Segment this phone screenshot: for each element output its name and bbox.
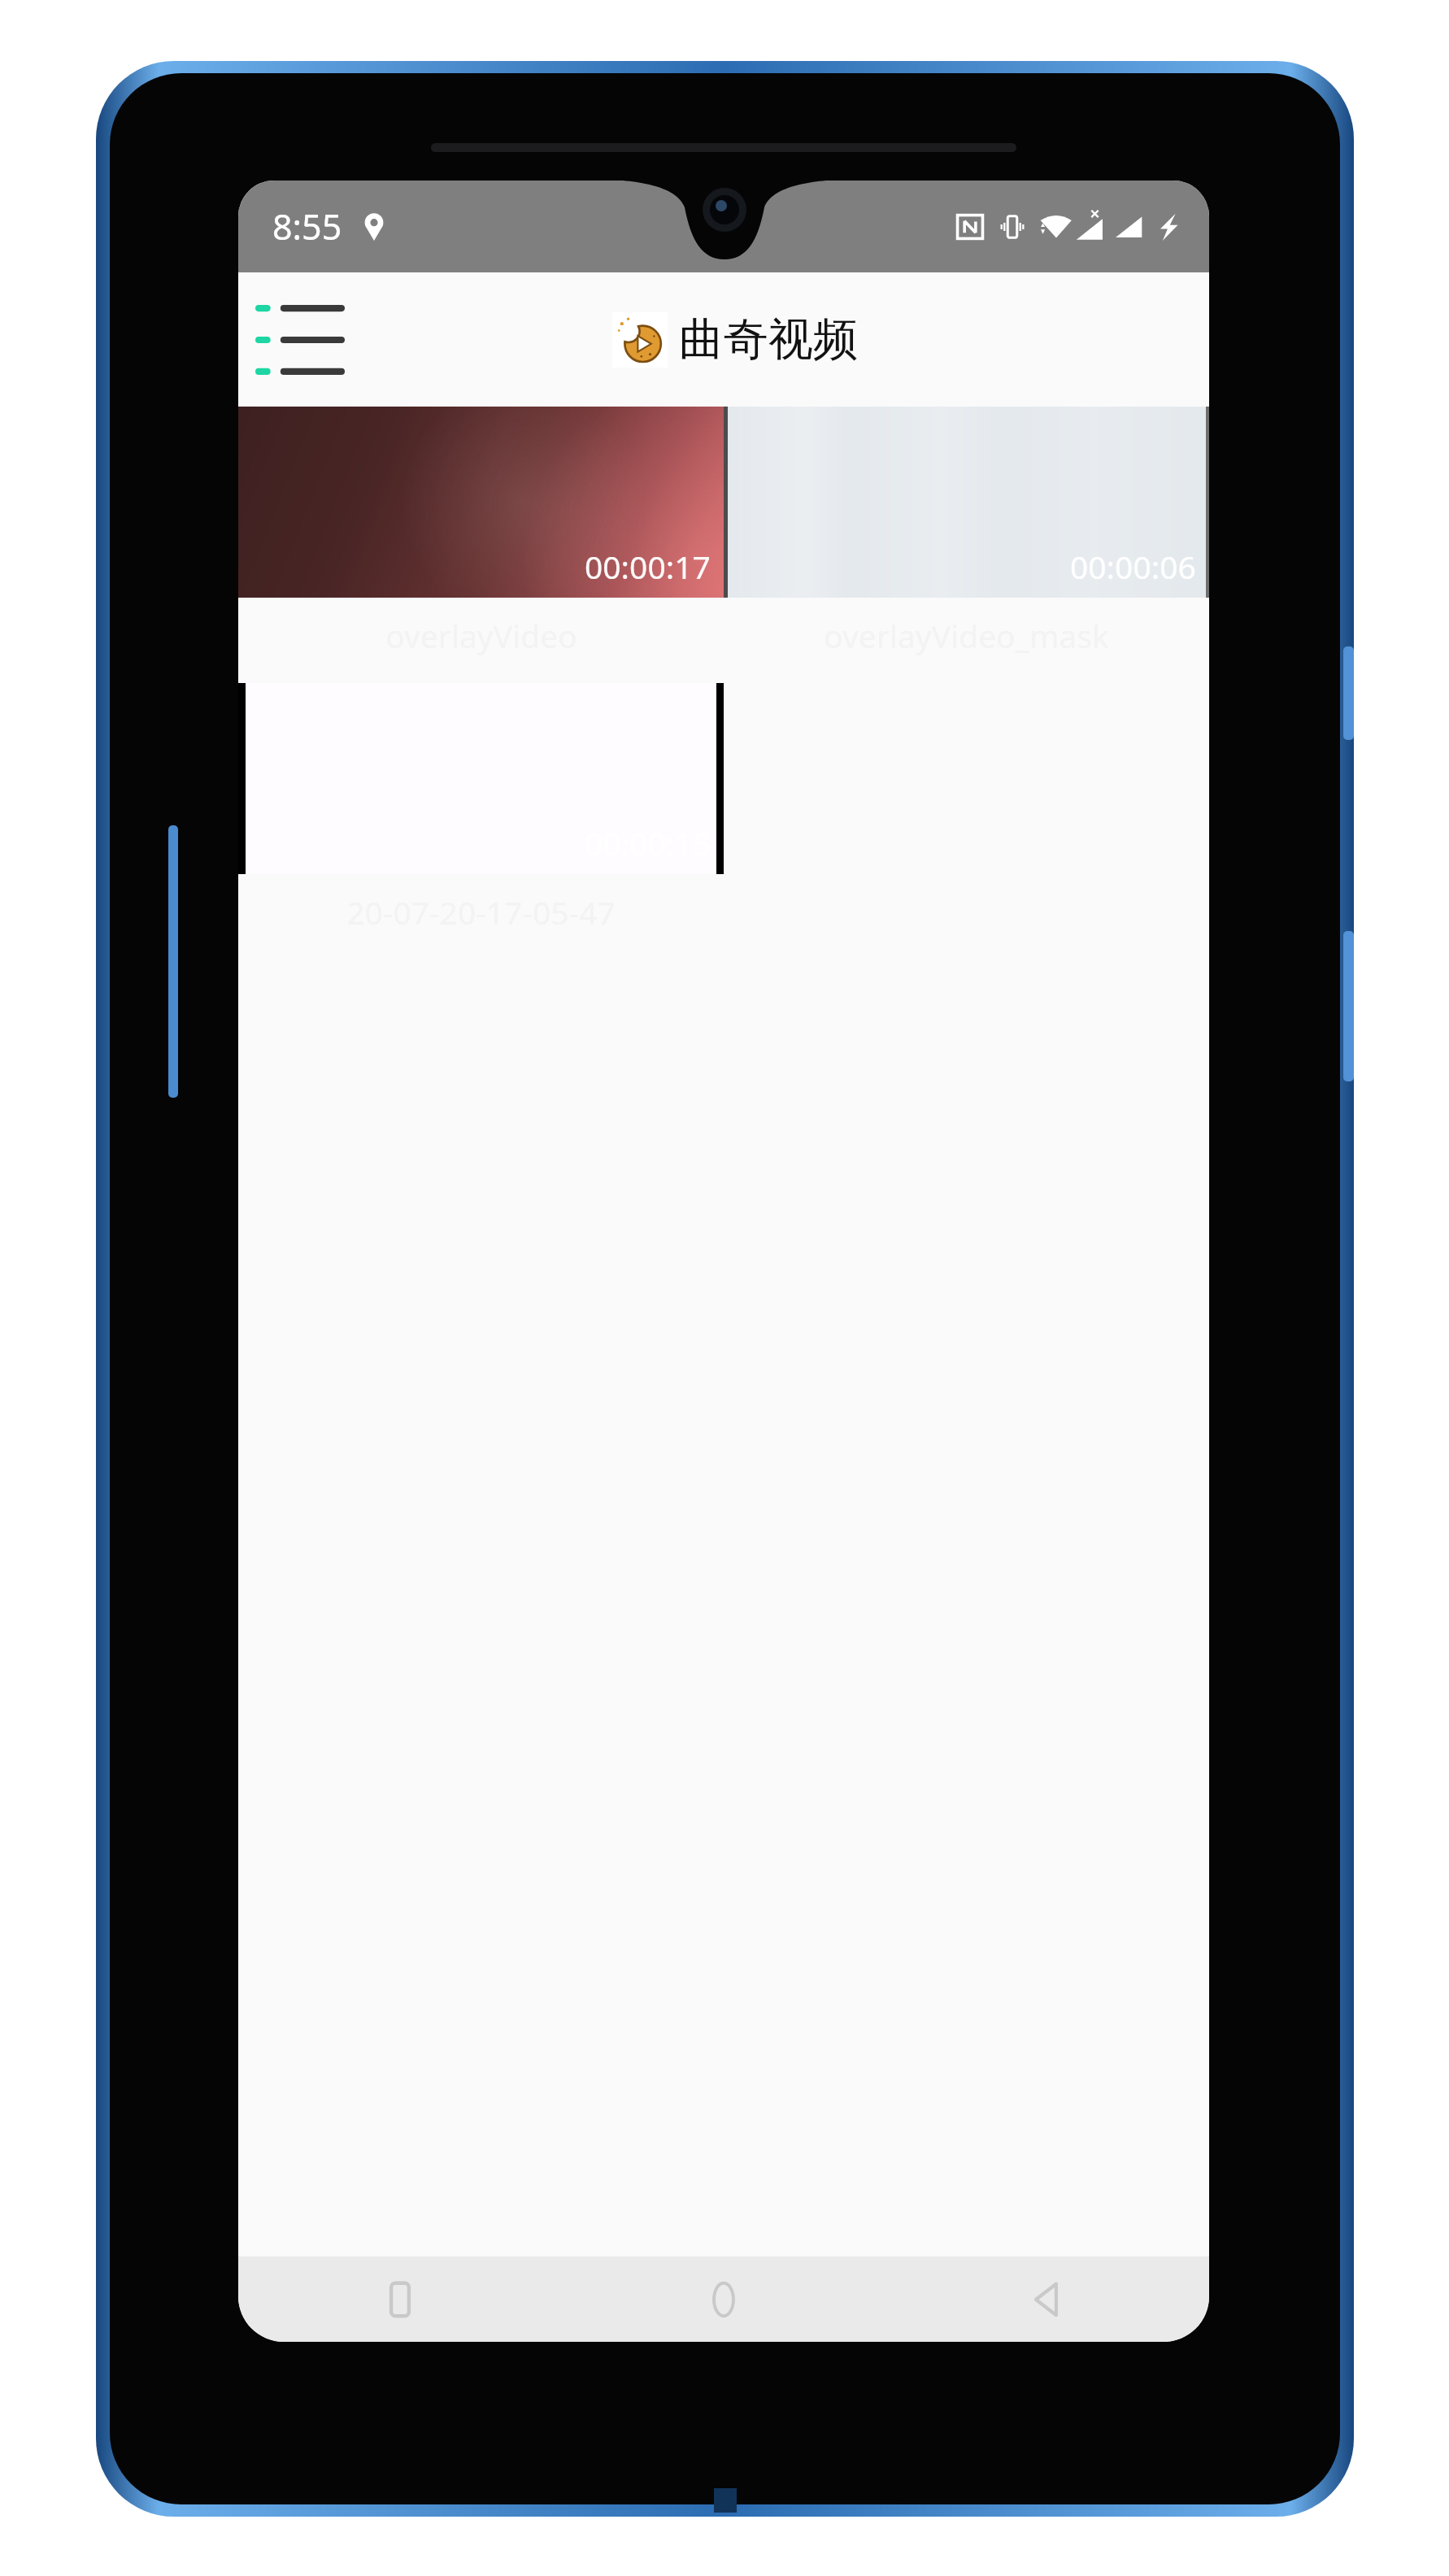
button[interactable]: Menu	[250, 289, 350, 390]
staticText: 曲奇视频	[679, 311, 858, 368]
button[interactable]: Home	[562, 2256, 885, 2342]
button[interactable]: Recent apps	[238, 2256, 562, 2342]
button[interactable]: 00:00:06	[724, 407, 1209, 683]
button[interactable]: 00:00:15	[238, 683, 724, 959]
button[interactable]: Back	[885, 2256, 1209, 2342]
staticText: 00:00:17	[585, 545, 711, 588]
staticText: 00:00:06	[1070, 545, 1196, 588]
staticText: 8:55	[272, 202, 342, 250]
button[interactable]: 00:00:17	[238, 407, 724, 683]
